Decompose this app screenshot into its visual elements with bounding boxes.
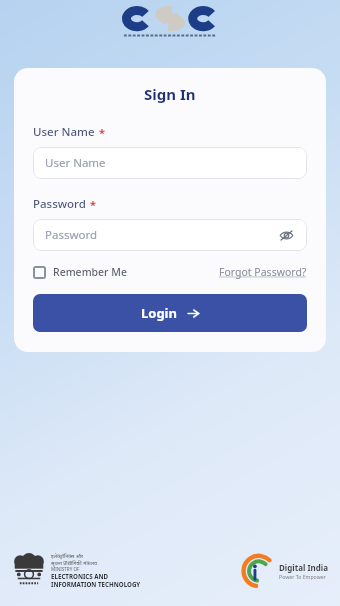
button[interactable]: Forgot Password? bbox=[219, 265, 307, 279]
staticText: Digital India bbox=[279, 562, 328, 573]
staticText: सूचना प्रौद्योगिकी मंत्रालय bbox=[51, 559, 98, 566]
staticText: Remember Me bbox=[53, 265, 127, 279]
staticText: इलेक्ट्रॉनिक्स और bbox=[51, 552, 84, 559]
staticText: Password bbox=[33, 196, 86, 212]
staticText: * bbox=[99, 125, 105, 140]
staticText: * bbox=[90, 197, 96, 212]
button[interactable]: Show password bbox=[277, 226, 295, 244]
staticText: Login bbox=[141, 304, 177, 322]
staticText: Forgot Password? bbox=[219, 265, 307, 279]
button[interactable]: User Name bbox=[33, 147, 307, 179]
staticText: Power To Empower bbox=[279, 573, 326, 580]
staticText: MINISTRY OF bbox=[51, 566, 80, 572]
staticText: Sign In bbox=[144, 84, 196, 104]
button[interactable]: Remember Me bbox=[33, 265, 127, 279]
staticText: ELECTRONICS AND bbox=[51, 572, 109, 580]
button[interactable]: Login bbox=[33, 294, 307, 332]
staticText: User Name bbox=[45, 155, 106, 171]
staticText: INFORMATION TECHNOLOGY bbox=[51, 580, 141, 588]
staticText: User Name bbox=[33, 124, 95, 140]
staticText: Password bbox=[45, 227, 98, 243]
button[interactable]: Password bbox=[33, 219, 307, 251]
